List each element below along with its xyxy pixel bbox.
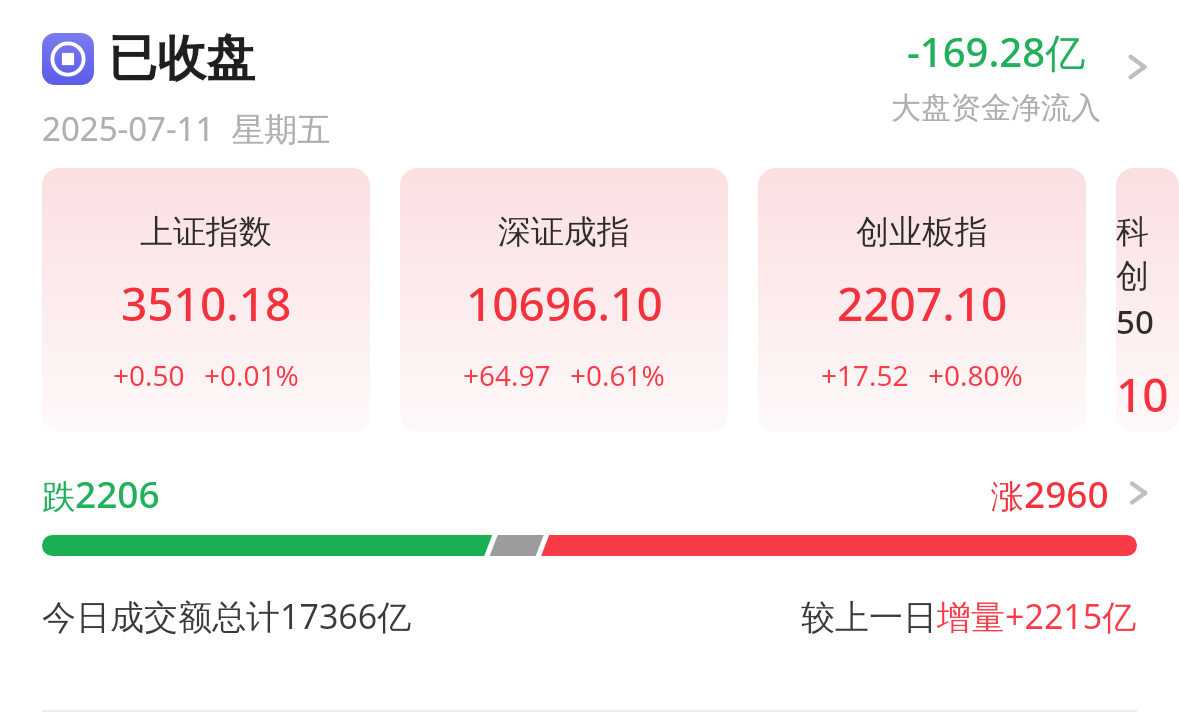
staticText: 涨2960	[991, 468, 1109, 518]
staticText: 已收盘	[108, 28, 255, 90]
button[interactable]: 深证成指	[400, 168, 728, 432]
staticText: 2025-07-11 星期五	[42, 106, 331, 151]
button[interactable]: 跌2206	[42, 468, 1153, 518]
staticText: 科创50	[1116, 211, 1179, 344]
other: More	[1123, 52, 1153, 82]
staticText: 大盘资金净流入	[891, 89, 1101, 127]
button[interactable]: Market closed	[0, 0, 1179, 168]
staticText: 2207.10	[837, 272, 1008, 335]
staticText: 3510.18	[121, 272, 292, 335]
other: Market closed	[42, 33, 94, 85]
staticText: +0.01%	[204, 356, 299, 394]
staticText: 今日成交额总计17366亿	[42, 593, 412, 639]
staticText: +0.80%	[928, 356, 1023, 394]
staticText: 较上一日增量+2215亿	[801, 593, 1137, 639]
staticText: 跌2206	[42, 468, 160, 518]
staticText: +17.52	[821, 356, 909, 394]
staticText: 深证成指	[498, 211, 630, 253]
staticText: +64.97	[463, 356, 551, 394]
button[interactable]: 创业板指	[758, 168, 1086, 432]
staticText: 1010.10	[1116, 363, 1179, 426]
staticText: 上证指数	[140, 211, 272, 253]
staticText: +0.61%	[570, 356, 665, 394]
button[interactable]: 上证指数	[42, 168, 370, 432]
staticText: -169.28亿	[907, 24, 1086, 79]
staticText: 创业板指	[856, 211, 988, 253]
staticText: 10696.10	[466, 272, 663, 335]
button[interactable]: 科创50	[1116, 168, 1179, 432]
staticText: +0.50	[113, 356, 185, 394]
